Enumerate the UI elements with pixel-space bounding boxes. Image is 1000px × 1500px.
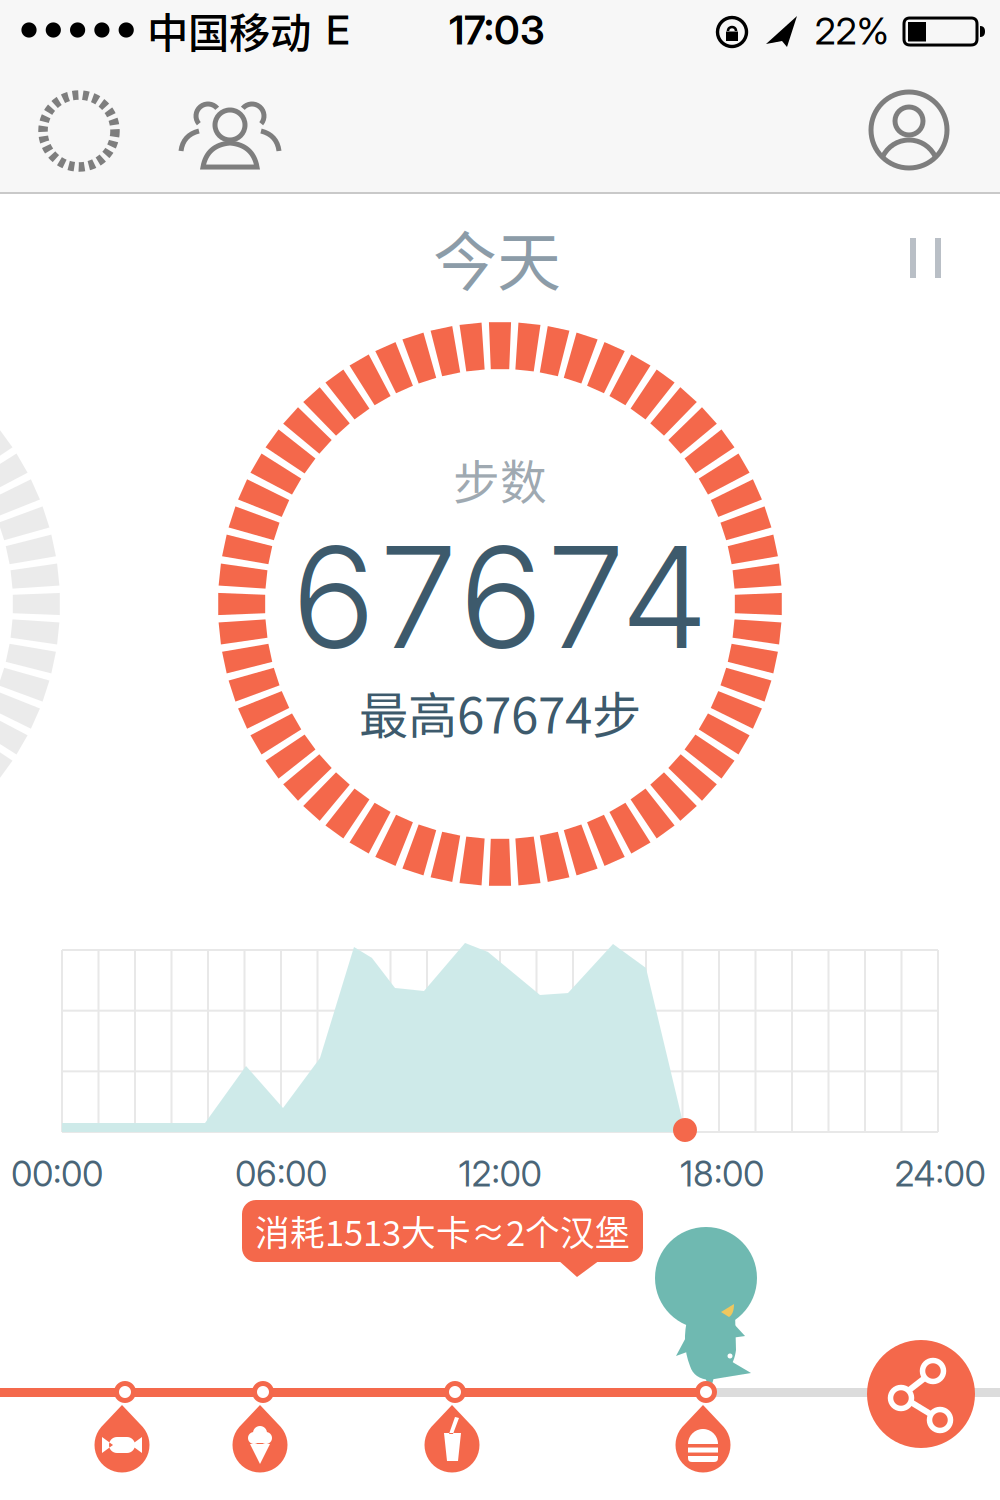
button[interactable]: Profile: [863, 84, 955, 176]
staticText: 22%: [814, 8, 889, 54]
button[interactable]: Burger: [671, 1402, 741, 1478]
staticText: 中国移动: [147, 0, 311, 60]
staticText: 00:00: [11, 1153, 103, 1195]
button[interactable]: Candy: [90, 1402, 160, 1478]
button[interactable]: Friends: [175, 85, 285, 177]
staticText: 06:00: [235, 1153, 327, 1195]
staticText: 18:00: [680, 1153, 764, 1195]
button[interactable]: Drink: [420, 1402, 490, 1478]
button[interactable]: Steps: [34, 86, 124, 176]
staticText: 最高67674步: [359, 676, 641, 748]
staticText: E: [326, 6, 350, 54]
staticText: 消耗1513大卡≈2个汉堡: [255, 1206, 630, 1256]
button[interactable]: Share: [864, 1337, 978, 1451]
staticText: 67674: [291, 512, 709, 682]
button[interactable]: Pause: [895, 230, 955, 286]
button[interactable]: Ice cream: [228, 1402, 298, 1478]
staticText: 12:00: [458, 1153, 541, 1195]
staticText: 17:03: [449, 6, 545, 54]
staticText: 步数: [453, 445, 547, 513]
staticText: 24:00: [894, 1153, 985, 1195]
staticText: 今天: [433, 211, 561, 303]
